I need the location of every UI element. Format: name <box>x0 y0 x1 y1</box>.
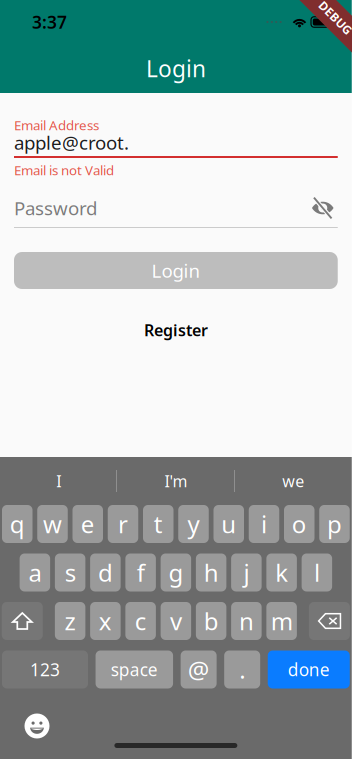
staticText: r <box>118 508 128 540</box>
staticText: a <box>28 557 41 588</box>
staticText: Login <box>146 53 206 83</box>
staticText: u <box>221 508 236 540</box>
button[interactable]: v <box>161 602 191 640</box>
button[interactable]: j <box>231 553 262 591</box>
staticText: Email is not Valid <box>14 161 114 179</box>
staticText: v <box>170 605 182 637</box>
staticText: m <box>271 605 293 637</box>
button[interactable]: p <box>319 505 350 543</box>
button[interactable]: o <box>284 505 314 543</box>
button[interactable]: k <box>266 553 297 591</box>
staticText: Email Address <box>14 116 99 134</box>
button[interactable]: e <box>72 505 103 543</box>
button[interactable]: x <box>90 602 121 640</box>
staticText: o <box>292 508 307 540</box>
staticText: p <box>327 508 342 540</box>
staticText: i <box>261 508 267 540</box>
staticText: we <box>282 470 304 492</box>
staticText: y <box>187 508 199 540</box>
staticText: apple@croot. <box>14 130 129 155</box>
staticText: n <box>239 605 254 637</box>
staticText: @ <box>188 654 210 685</box>
button[interactable]: t <box>143 505 173 543</box>
staticText: s <box>65 557 76 588</box>
staticText: z <box>65 605 76 637</box>
staticText: e <box>81 508 95 540</box>
staticText: 3:37 <box>32 10 67 33</box>
button[interactable]: w <box>37 505 68 543</box>
staticText: space <box>111 658 158 681</box>
button[interactable]: d <box>90 553 121 591</box>
staticText: done <box>288 658 330 681</box>
staticText: c <box>135 605 147 637</box>
button[interactable]: Register <box>14 322 338 338</box>
button[interactable]: @ <box>181 650 217 688</box>
button[interactable]: q <box>2 505 32 543</box>
button[interactable]: b <box>196 602 226 640</box>
button[interactable]: m <box>266 602 297 640</box>
button[interactable]: y <box>178 505 209 543</box>
staticText: w <box>43 508 62 540</box>
staticText: I'm <box>164 470 187 492</box>
button[interactable]: l <box>302 553 332 591</box>
staticText: k <box>275 557 288 588</box>
staticText: f <box>137 557 145 588</box>
staticText: . <box>239 654 245 685</box>
button[interactable]: g <box>161 553 191 591</box>
staticText: Register <box>144 319 208 341</box>
staticText: g <box>168 557 183 588</box>
staticText: b <box>204 605 219 637</box>
button[interactable]: s <box>55 553 85 591</box>
button[interactable]: done <box>268 650 350 688</box>
button[interactable]: Shift <box>2 602 43 640</box>
staticText: h <box>204 557 219 588</box>
staticText: 123 <box>30 658 60 681</box>
button[interactable]: h <box>196 553 226 591</box>
staticText: t <box>154 508 163 540</box>
button[interactable]: Show password <box>308 196 338 220</box>
button[interactable]: space <box>96 650 173 688</box>
button[interactable]: z <box>55 602 85 640</box>
button[interactable]: Login <box>14 252 338 289</box>
button[interactable]: n <box>231 602 262 640</box>
staticText: d <box>98 557 113 588</box>
staticText: Password <box>14 196 97 220</box>
staticText: l <box>314 557 320 588</box>
staticText: I <box>56 470 61 492</box>
staticText: x <box>99 605 112 637</box>
button[interactable]: r <box>108 505 138 543</box>
staticText: j <box>243 557 249 588</box>
button[interactable]: f <box>125 553 156 591</box>
button[interactable]: 123 <box>2 650 88 688</box>
button[interactable]: Delete <box>309 602 350 640</box>
button[interactable]: a <box>20 553 50 591</box>
staticText: Login <box>151 258 200 283</box>
button[interactable]: i <box>249 505 279 543</box>
button[interactable]: c <box>125 602 156 640</box>
button[interactable]: Emoji keyboard <box>20 709 53 742</box>
button[interactable]: . <box>224 650 260 688</box>
staticText: DEBUG <box>311 19 352 35</box>
button[interactable]: u <box>213 505 244 543</box>
staticText: q <box>10 508 25 540</box>
